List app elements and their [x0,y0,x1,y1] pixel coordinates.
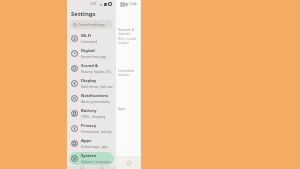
staticText: Settings [71,10,96,18]
staticText: Apps [81,138,92,144]
button[interactable]: Battery [69,107,114,120]
staticText: Digital Wellbeing & parental controls [81,48,114,54]
staticText: Wi-Fi, mobile, hotspot [118,37,141,45]
button[interactable]: Sound & Vibration [69,62,114,75]
staticText: 12:46 [129,2,137,6]
button[interactable]: Back [116,156,141,169]
staticText: System [81,153,97,159]
button[interactable]: Search settings [70,20,113,29]
button[interactable]: Home [97,166,106,169]
button[interactable]: System [69,152,114,165]
staticText: Wi-Fi [81,33,92,39]
button[interactable]: Privacy [69,122,114,135]
staticText: Connected [81,40,98,44]
button[interactable]: Recents [77,166,86,169]
button[interactable]: Display [69,77,114,90]
staticText: Permissions, activity controls [81,130,114,134]
button[interactable]: Notifications [69,92,114,105]
button[interactable]: Digital Wellbeing & parental controls [69,47,114,60]
staticText: Alerts, permissions, conversations [81,100,114,104]
staticText: Apps [118,107,126,111]
staticText: Search settings [79,22,105,27]
staticText: Privacy [81,123,97,129]
staticText: Updates, languages, backup [81,160,114,164]
staticText: 2:47 [90,2,97,6]
staticText: Screen time, app timers, Focus mode [81,55,114,59]
staticText: Battery [81,108,97,114]
staticText: 100% - charging [81,115,106,119]
staticText: Sound & Vibration [81,63,114,69]
staticText: Display [81,78,97,84]
staticText: Default apps, app permissions [81,145,114,149]
button[interactable]: Wi-Fi [69,32,114,45]
staticText: Volume, haptics, Do Not Disturb [81,70,114,74]
button[interactable]: Apps [69,137,114,150]
staticText: Connected devices [118,69,141,77]
staticText: Dark theme, font size, brightness [81,85,114,89]
staticText: Network & internet [118,28,141,36]
staticText: Notifications [81,93,109,99]
